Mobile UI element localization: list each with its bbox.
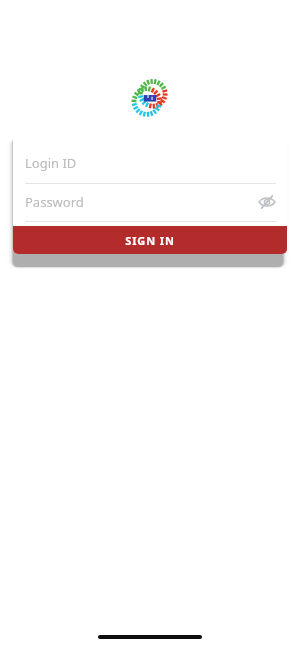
button[interactable]: Login ID <box>13 136 287 184</box>
staticText: SIGN IN <box>125 233 175 248</box>
staticText: Login ID <box>25 154 77 172</box>
button[interactable]: SIGN IN <box>13 226 287 254</box>
button[interactable]: Show password <box>255 190 279 214</box>
button[interactable]: Password <box>13 184 287 222</box>
staticText: Password <box>25 193 84 211</box>
